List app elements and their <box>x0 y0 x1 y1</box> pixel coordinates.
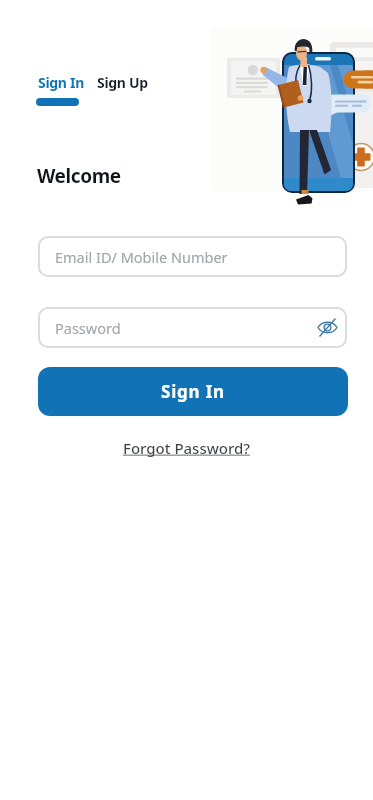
staticText: Welcome <box>37 163 121 189</box>
staticText: Sign In <box>161 380 225 403</box>
staticText: Forgot Password? <box>123 438 251 458</box>
button[interactable]: Sign Up <box>97 73 148 92</box>
staticText: Sign In <box>38 73 84 92</box>
staticText: Password <box>55 318 121 338</box>
staticText: Sign Up <box>97 73 148 92</box>
button[interactable]: Forgot Password? <box>123 438 251 458</box>
button[interactable]: Email ID/ Mobile Number <box>38 236 347 277</box>
button[interactable]: Sign In <box>38 367 348 416</box>
staticText: Email ID/ Mobile Number <box>55 247 228 267</box>
button[interactable]: Sign In <box>38 73 84 92</box>
button[interactable]: Password <box>38 307 347 348</box>
